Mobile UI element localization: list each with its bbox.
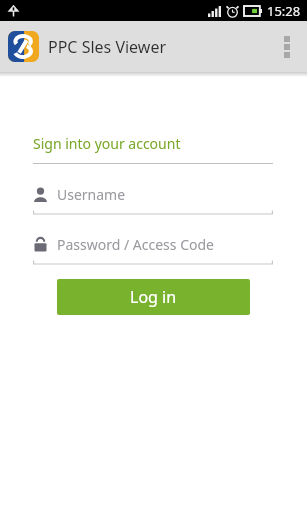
button[interactable]: More options [267, 21, 307, 72]
staticText: Sign into your account [33, 134, 181, 153]
staticText: Password / Access Code [57, 235, 214, 254]
staticText: Log in [130, 286, 177, 308]
button[interactable]: Username field [33, 182, 273, 215]
staticText: 15:28 [267, 2, 301, 20]
staticText: PPC Sles Viewer [48, 36, 167, 58]
button[interactable]: Password field [33, 232, 273, 265]
button[interactable]: Log in [57, 279, 250, 315]
staticText: Username [57, 185, 126, 204]
